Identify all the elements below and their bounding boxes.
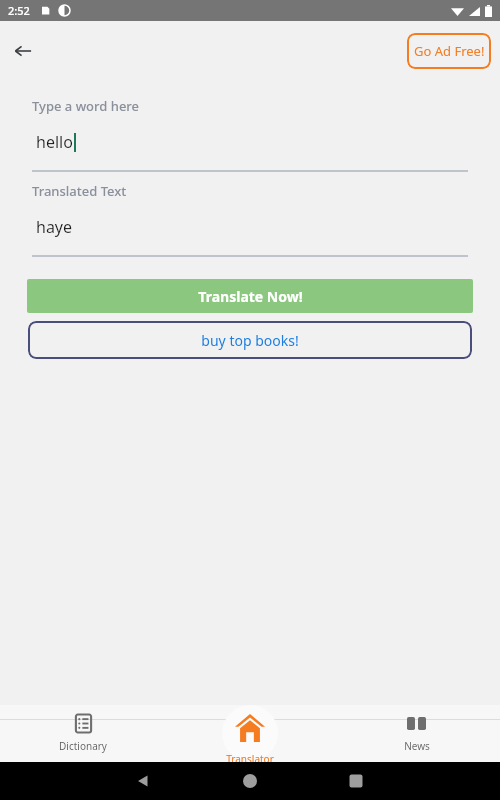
staticText: 2:52 — [8, 3, 30, 18]
staticText: haye — [36, 216, 73, 238]
button[interactable]: News — [333, 714, 500, 753]
staticText: Translated Text — [32, 182, 127, 200]
staticText: Go Ad Free! — [414, 42, 485, 60]
button[interactable]: Dictionary — [0, 714, 166, 753]
staticText: hello — [36, 131, 73, 153]
button[interactable]: Go Ad Free! — [407, 33, 491, 69]
button[interactable]: Translator — [207, 712, 293, 766]
staticText: buy top books! — [201, 331, 299, 350]
staticText: News — [404, 739, 430, 753]
staticText: Translate Now! — [198, 287, 303, 306]
staticText: Type a word here — [32, 97, 140, 115]
button[interactable]: Translate Now! — [27, 279, 473, 313]
button[interactable]: Back — [8, 36, 38, 66]
staticText: Translator — [226, 752, 274, 766]
button[interactable]: buy top books! — [28, 321, 472, 359]
staticText: Dictionary — [59, 739, 107, 753]
